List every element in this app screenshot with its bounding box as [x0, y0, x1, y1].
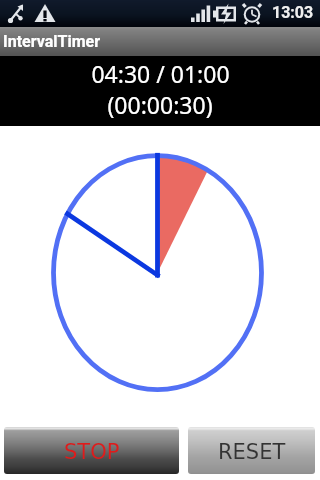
staticText: 13:03 [272, 3, 314, 22]
button[interactable]: STOP [4, 427, 179, 474]
staticText: IntervalTimer [3, 32, 100, 51]
staticText: (00:00:30) [107, 89, 213, 120]
staticText: RESET [218, 440, 286, 464]
staticText: STOP [64, 440, 120, 464]
button[interactable]: RESET [188, 427, 315, 474]
staticText: 04:30 / 01:00 [91, 58, 230, 89]
